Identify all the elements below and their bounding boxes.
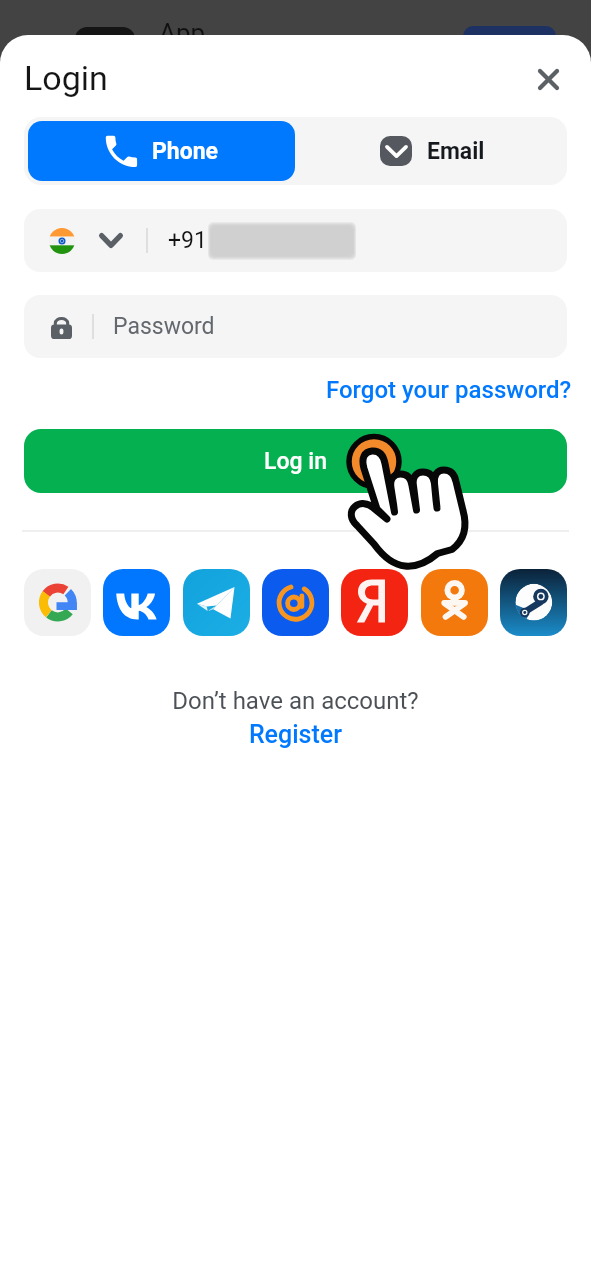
button[interactable]: Log in bbox=[24, 429, 567, 493]
staticText: Don’t have an account? bbox=[0, 687, 591, 715]
staticText: Phone bbox=[152, 138, 219, 165]
button[interactable]: Phone bbox=[28, 121, 295, 181]
staticText: Forgot your password? bbox=[326, 376, 572, 404]
button[interactable]: Register bbox=[245, 718, 347, 751]
staticText: Log in bbox=[264, 448, 327, 475]
staticText: Email bbox=[427, 138, 485, 165]
staticText: Password bbox=[113, 313, 215, 340]
button[interactable]: Sign in bbox=[341, 569, 408, 636]
button[interactable]: Sign in bbox=[183, 569, 250, 636]
staticText: App bbox=[159, 18, 206, 48]
button[interactable]: Password bbox=[24, 295, 567, 358]
button[interactable]: Sign in bbox=[103, 569, 170, 636]
button[interactable]: Sign in bbox=[421, 569, 488, 636]
button[interactable]: Sign in bbox=[262, 569, 329, 636]
staticText: Register bbox=[249, 720, 343, 749]
button[interactable]: +91 bbox=[24, 209, 567, 272]
staticText: +91 bbox=[168, 227, 207, 254]
button[interactable]: Close bbox=[525, 56, 571, 102]
button[interactable]: Email bbox=[295, 121, 563, 181]
button[interactable]: Sign in bbox=[24, 569, 91, 636]
staticText: Login bbox=[24, 58, 108, 98]
button[interactable]: Forgot your password? bbox=[324, 373, 574, 407]
button[interactable]: Sign in bbox=[500, 569, 567, 636]
